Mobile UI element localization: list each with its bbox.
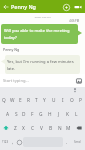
button[interactable]: U (49, 93, 58, 107)
button[interactable]: I (58, 93, 67, 107)
button[interactable]: S (12, 107, 20, 121)
staticText: D (22, 111, 26, 118)
staticText: C (31, 125, 35, 132)
staticText: V (40, 125, 43, 132)
staticText: . (66, 139, 68, 145)
button[interactable]: C (28, 121, 37, 135)
staticText: T (35, 97, 38, 104)
staticText: G (39, 111, 43, 118)
button[interactable]: Send (71, 137, 84, 147)
button[interactable]: B (46, 121, 55, 135)
staticText: R (27, 97, 30, 104)
staticText: Z (14, 125, 17, 132)
staticText: Q (2, 97, 6, 104)
button[interactable]: Y (40, 93, 49, 107)
staticText: Penny Ng (11, 3, 36, 10)
staticText: Yes, but I'm running a few minutes late. (7, 59, 77, 70)
button[interactable]: K (63, 107, 72, 121)
staticText: U (52, 97, 56, 104)
staticText: Send (74, 140, 81, 144)
staticText: H (48, 111, 52, 118)
staticText: S (15, 111, 18, 118)
staticText: Penny Ng (3, 47, 20, 52)
staticText: , (12, 139, 14, 145)
button[interactable]: Shift (0, 121, 11, 135)
staticText: K (66, 111, 69, 118)
staticText: P (79, 97, 82, 104)
button[interactable]: Q (0, 93, 8, 107)
button[interactable]: T (32, 93, 40, 107)
button[interactable]: O (67, 93, 76, 107)
button[interactable]: Voice input (72, 87, 78, 93)
button[interactable]: X (19, 121, 28, 135)
button[interactable]: , (10, 137, 16, 147)
staticText: Y (43, 97, 46, 104)
button[interactable]: W (8, 93, 16, 107)
button[interactable]: G (36, 107, 45, 121)
staticText: L (75, 111, 78, 118)
button[interactable]: . (63, 137, 71, 147)
button[interactable]: Z (11, 121, 19, 135)
button[interactable]: P (76, 93, 85, 107)
staticText: I (62, 97, 64, 104)
staticText: A (6, 111, 10, 118)
staticText: Today 4:06 PM (0, 15, 85, 18)
button[interactable]: N (55, 121, 64, 135)
staticText: J (58, 111, 60, 118)
button[interactable]: Back (0, 1, 11, 12)
button[interactable]: ?123 (1, 137, 10, 147)
button[interactable]: E (16, 93, 24, 107)
button[interactable]: Add person (60, 1, 72, 13)
button[interactable]: R (24, 93, 32, 107)
staticText: O (70, 97, 74, 104)
staticText: B (49, 125, 53, 132)
staticText: N (58, 125, 62, 132)
button[interactable]: Backspace (73, 121, 85, 135)
staticText: Will you able to make the meeting today? (4, 28, 76, 40)
staticText: M (66, 125, 71, 132)
staticText: 4:06 PM (0, 19, 79, 23)
button[interactable]: F (28, 107, 36, 121)
button[interactable]: A (4, 107, 12, 121)
button[interactable]: Video call (72, 1, 84, 13)
staticText: W (10, 97, 15, 104)
button[interactable]: M (64, 121, 73, 135)
button[interactable]: Emoji (16, 137, 23, 147)
button[interactable]: Attach image (73, 75, 85, 87)
staticText: X (22, 125, 25, 132)
staticText: ?123 (2, 140, 9, 144)
staticText: Start typing... (3, 78, 73, 84)
button[interactable]: L (72, 107, 81, 121)
staticText: E (19, 97, 22, 104)
button[interactable]: J (54, 107, 63, 121)
button[interactable]: V (37, 121, 46, 135)
button[interactable]: D (20, 107, 28, 121)
staticText: F (31, 111, 34, 118)
button[interactable]: H (45, 107, 54, 121)
